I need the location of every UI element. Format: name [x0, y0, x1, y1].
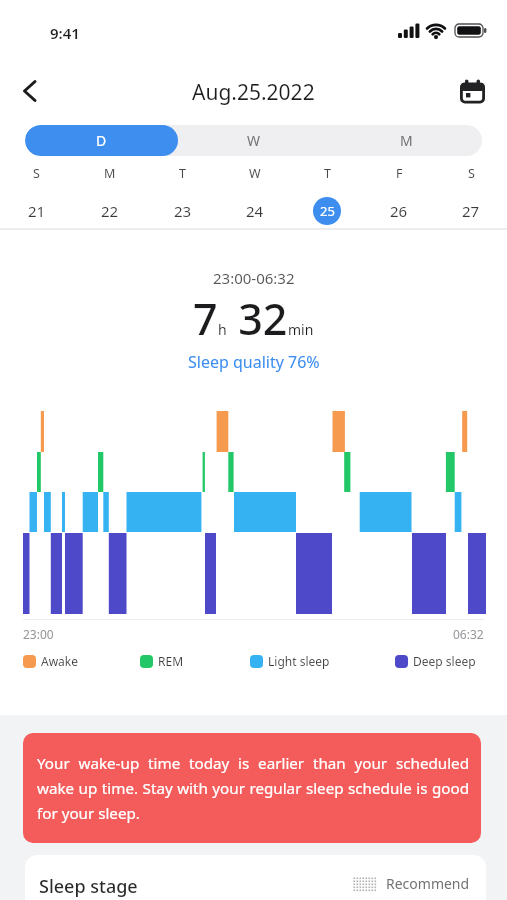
staticText: 21 — [28, 201, 46, 221]
staticText: F — [396, 165, 403, 182]
staticText: 23 — [174, 201, 192, 221]
staticText: Aug.25.2022 — [192, 78, 315, 107]
staticText: D — [96, 131, 107, 150]
staticText: Light sleep — [268, 653, 330, 669]
button[interactable]: Recommend — [353, 874, 470, 893]
staticText: 23:00-06:32 — [213, 268, 295, 288]
staticText: 7 — [193, 289, 218, 348]
staticText: W — [249, 165, 261, 182]
button[interactable]: 23 — [174, 201, 192, 221]
staticText: 23:00 — [23, 626, 54, 642]
staticText: M — [400, 131, 413, 150]
staticText: Sleep stage — [39, 874, 138, 899]
button[interactable]: 21 — [28, 201, 46, 221]
button[interactable]: 22 — [101, 201, 119, 221]
staticText: 27 — [462, 201, 480, 221]
staticText: Awake — [41, 653, 79, 669]
staticText: 9:41 — [50, 23, 80, 43]
staticText: T — [324, 165, 331, 182]
staticText: S — [33, 165, 40, 182]
staticText: 24 — [246, 201, 264, 221]
staticText: W — [247, 131, 261, 150]
staticText: 32 — [227, 289, 288, 348]
staticText: min — [288, 320, 314, 339]
button[interactable]: 25 — [313, 197, 341, 225]
staticText: 22 — [101, 201, 119, 221]
staticText: 25 — [320, 202, 335, 220]
button[interactable]: 24 — [246, 201, 264, 221]
staticText: 06:32 — [453, 626, 484, 642]
staticText: Your wake-up time today is earlier than … — [37, 753, 469, 824]
staticText: 26 — [390, 201, 408, 221]
button[interactable]: 27 — [462, 201, 480, 221]
staticText: Recommend — [386, 874, 470, 893]
button[interactable] — [452, 72, 492, 110]
staticText: Sleep quality 76% — [188, 351, 320, 373]
staticText: S — [468, 165, 475, 182]
button[interactable]: D — [25, 125, 178, 156]
button[interactable]: W — [178, 125, 330, 156]
staticText: Deep sleep — [413, 653, 476, 669]
button[interactable] — [10, 71, 50, 111]
button[interactable]: 26 — [390, 201, 408, 221]
staticText: h — [218, 320, 227, 339]
button[interactable]: Sleep quality 76% — [188, 351, 320, 373]
staticText: T — [179, 165, 186, 182]
staticText: M — [104, 165, 116, 182]
button[interactable]: M — [330, 125, 482, 156]
button[interactable]: Your wake-up time today is earlier than … — [23, 733, 481, 843]
staticText: REM — [158, 653, 184, 669]
